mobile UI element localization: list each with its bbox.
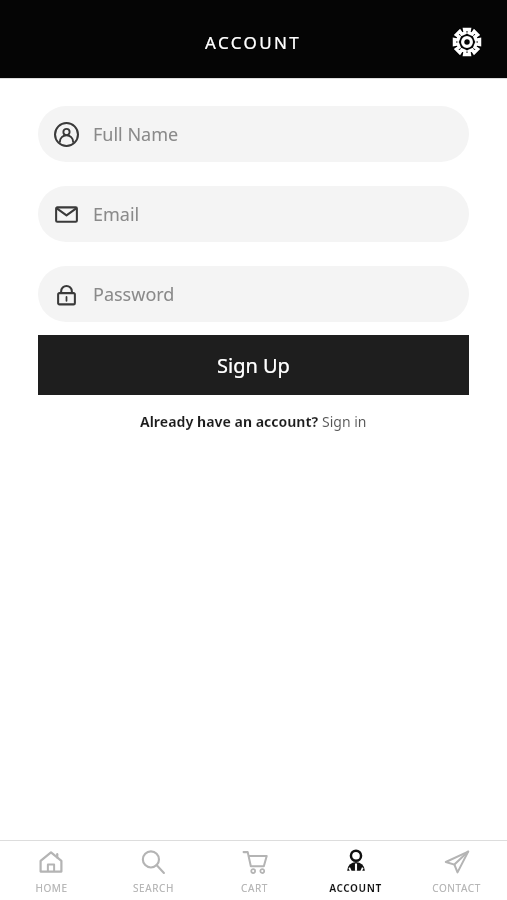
staticText: ACCOUNT [205, 31, 302, 54]
staticText: Email [93, 202, 140, 227]
button[interactable]: ACCOUNT [305, 841, 406, 900]
button[interactable]: Settings [445, 20, 489, 64]
button[interactable]: Full Name [38, 106, 469, 162]
staticText: Full Name [93, 122, 179, 147]
button[interactable]: Sign in [322, 412, 367, 431]
staticText: ACCOUNT [329, 881, 382, 895]
staticText: CART [241, 881, 268, 895]
staticText: Sign in [322, 412, 367, 431]
button[interactable]: Email [38, 186, 469, 242]
staticText: Sign Up [217, 352, 290, 379]
button[interactable]: CONTACT [406, 841, 507, 900]
button[interactable]: SEARCH [102, 841, 204, 900]
button[interactable]: Sign Up [38, 335, 469, 395]
button[interactable]: CART [204, 841, 305, 900]
staticText: Already have an account? [140, 412, 322, 431]
button[interactable]: HOME [0, 841, 102, 900]
button[interactable]: Password [38, 266, 469, 322]
staticText: SEARCH [133, 881, 174, 895]
staticText: Password [93, 282, 175, 307]
staticText: HOME [35, 881, 68, 895]
staticText: CONTACT [432, 881, 481, 895]
